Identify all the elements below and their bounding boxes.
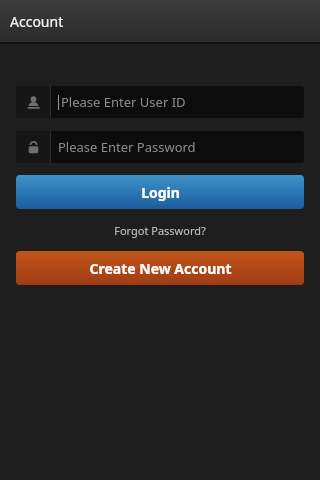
button[interactable]: Password xyxy=(16,131,304,163)
staticText: Please Enter User ID xyxy=(61,93,186,111)
staticText: Please Enter Password xyxy=(58,138,196,156)
other: Password xyxy=(16,131,50,163)
staticText: Create New Account xyxy=(89,259,232,278)
staticText: Account xyxy=(10,12,64,31)
button[interactable]: Login xyxy=(16,175,304,209)
staticText: Login xyxy=(141,183,180,202)
button[interactable]: User ID xyxy=(16,86,304,118)
button[interactable]: Create New Account xyxy=(16,251,304,285)
staticText: Forgot Password? xyxy=(114,223,206,238)
other: User ID xyxy=(16,86,50,118)
button[interactable]: Forgot Password? xyxy=(16,218,304,242)
